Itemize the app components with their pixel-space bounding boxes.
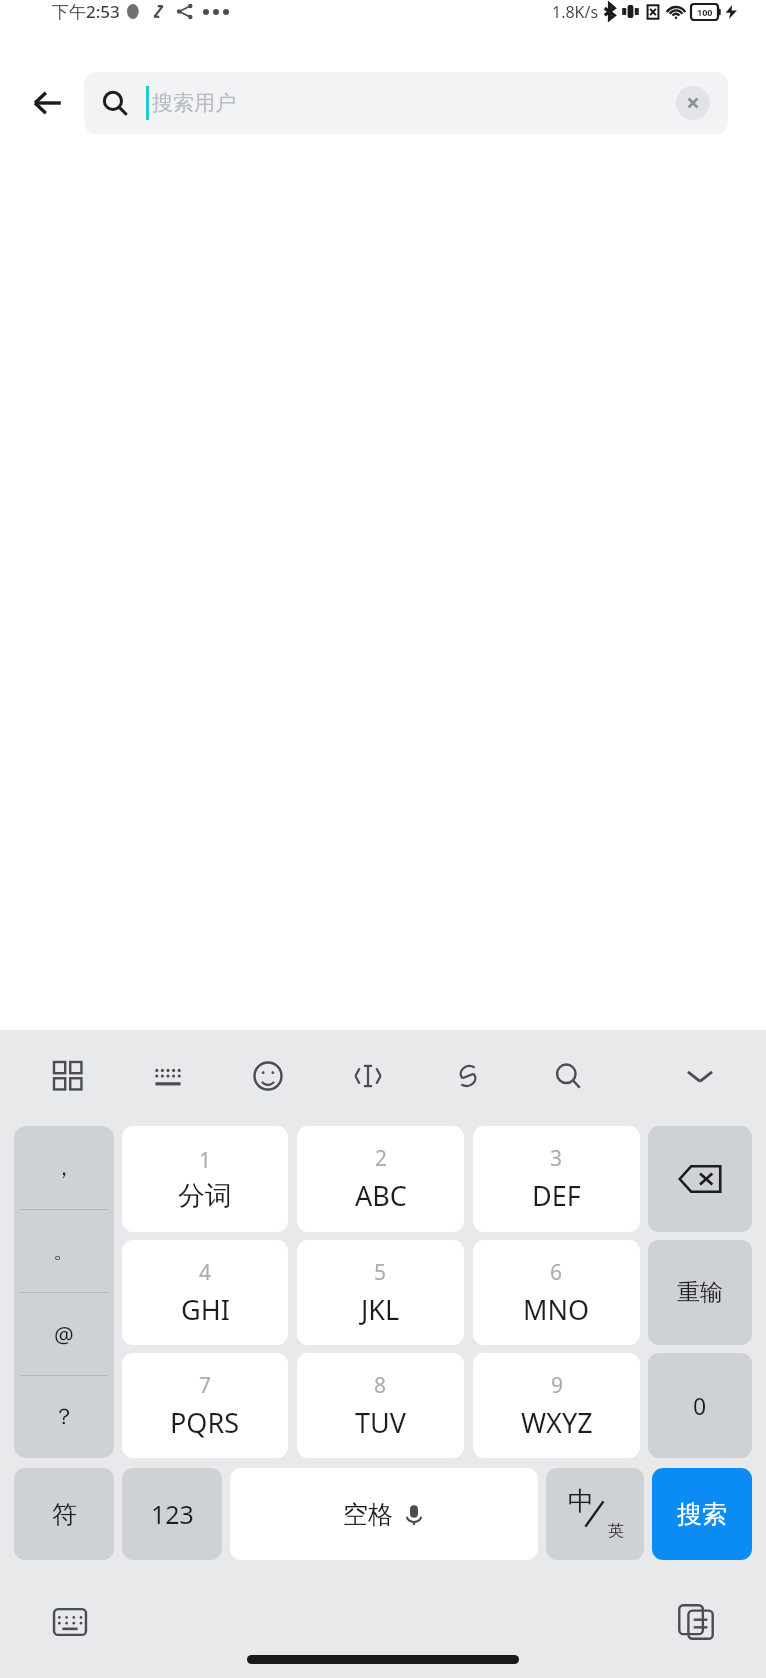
staticText: 符	[52, 1499, 77, 1530]
staticText: 下午2:53	[52, 0, 120, 23]
button[interactable]: Emoji	[244, 1052, 292, 1100]
button[interactable]: @	[14, 1293, 114, 1375]
button[interactable]: 0	[648, 1353, 752, 1458]
staticText: DEF	[532, 1177, 581, 1214]
button[interactable]: Chinese English toggle	[546, 1468, 644, 1560]
button[interactable]: 搜索	[652, 1468, 752, 1560]
staticText: ABC	[355, 1177, 407, 1214]
button[interactable]: Switch keyboard	[44, 1596, 96, 1648]
staticText: MNO	[523, 1291, 590, 1328]
staticText: GHI	[181, 1291, 230, 1328]
button[interactable]: ？	[14, 1376, 114, 1458]
button[interactable]: 符	[14, 1468, 114, 1560]
staticText: TUV	[355, 1404, 406, 1441]
staticText: 2	[375, 1144, 388, 1173]
button[interactable]: 重输	[648, 1240, 752, 1345]
button[interactable]: 。	[14, 1210, 114, 1292]
staticText: 4	[199, 1258, 212, 1287]
staticText: 5	[374, 1258, 387, 1287]
button[interactable]: ，	[14, 1126, 114, 1209]
button[interactable]: 5	[297, 1240, 464, 1345]
button[interactable]: 123	[122, 1468, 222, 1560]
button[interactable]: Clipboard link	[444, 1052, 492, 1100]
staticText: ，	[53, 1154, 75, 1182]
staticText: 100	[697, 6, 713, 18]
staticText: JKL	[361, 1291, 400, 1328]
staticText: 空格	[343, 1499, 393, 1530]
button[interactable]: 3	[473, 1126, 640, 1232]
staticText: PQRS	[170, 1404, 240, 1441]
staticText: ？	[53, 1403, 75, 1431]
staticText: 1.8K/s	[552, 1, 599, 23]
button[interactable]: 4	[122, 1240, 288, 1345]
staticText: 8	[374, 1371, 387, 1400]
staticText: 7	[199, 1371, 212, 1400]
staticText: 0	[693, 1390, 707, 1421]
button[interactable]: Panels	[44, 1052, 92, 1100]
button[interactable]: Clipboard	[670, 1596, 722, 1648]
button[interactable]: Backspace	[648, 1126, 752, 1232]
button[interactable]: 6	[473, 1240, 640, 1345]
staticText: 中	[568, 1485, 594, 1518]
button[interactable]: 9	[473, 1353, 640, 1458]
button[interactable]: Clear	[676, 86, 710, 120]
button[interactable]: Search	[544, 1052, 592, 1100]
staticText: 。	[53, 1237, 75, 1265]
staticText: 搜索用户	[152, 90, 236, 116]
button[interactable]: 2	[297, 1126, 464, 1232]
button[interactable]: Cursor	[344, 1052, 392, 1100]
staticText: @	[54, 1319, 74, 1349]
button[interactable]: 8	[297, 1353, 464, 1458]
staticText: 1	[199, 1146, 212, 1175]
staticText: 英	[608, 1521, 624, 1541]
staticText: 分词	[178, 1179, 232, 1213]
staticText: WXYZ	[521, 1404, 593, 1441]
button[interactable]: 空格	[230, 1468, 538, 1560]
staticText: 搜索	[677, 1499, 727, 1530]
button[interactable]: 7	[122, 1353, 288, 1458]
button[interactable]: Keyboard layout	[144, 1052, 192, 1100]
staticText: 6	[550, 1258, 563, 1287]
staticText: 3	[550, 1144, 563, 1173]
button[interactable]: 1	[122, 1126, 288, 1232]
button[interactable]: 搜索用户	[84, 72, 728, 134]
staticText: 重输	[677, 1278, 723, 1307]
button[interactable]: Hide keyboard	[676, 1052, 724, 1100]
staticText: 123	[151, 1497, 194, 1531]
staticText: 9	[551, 1371, 564, 1400]
button[interactable]: Back	[10, 66, 84, 140]
